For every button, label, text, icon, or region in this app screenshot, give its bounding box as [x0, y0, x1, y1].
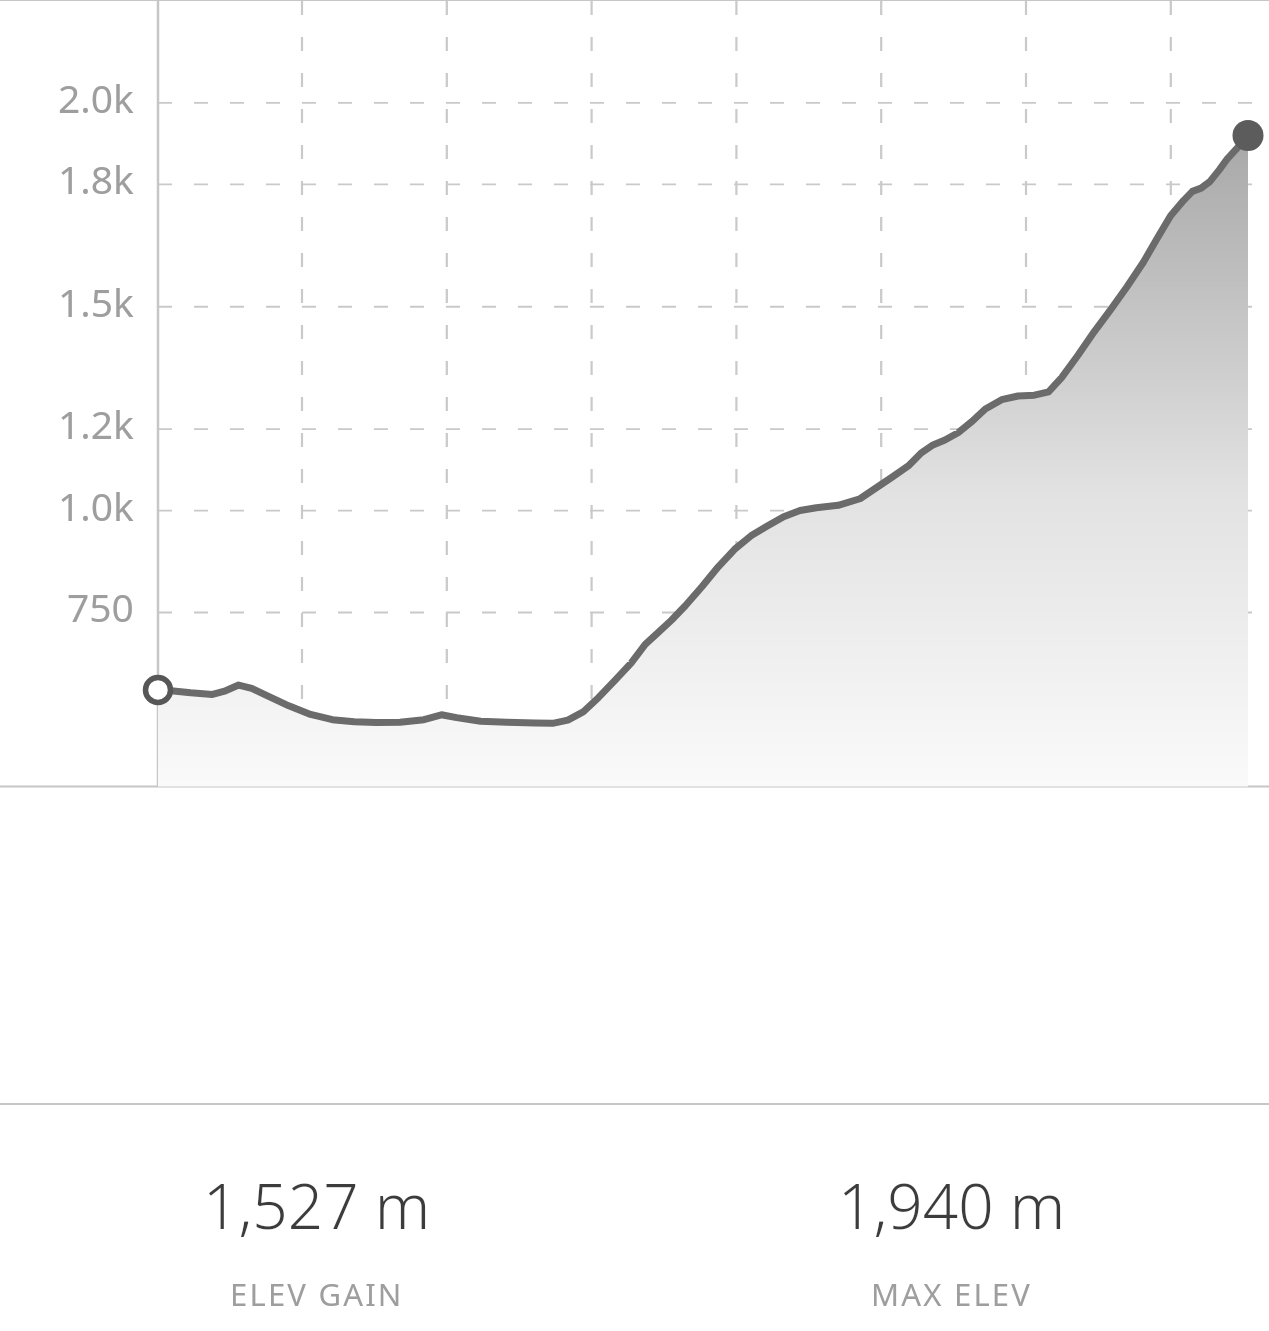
staticText: 1.0k	[58, 479, 134, 532]
button[interactable]: 1,527 m	[0, 1105, 634, 1331]
staticText: 1.5k	[58, 275, 134, 328]
staticText: MAX ELEV	[871, 1273, 1033, 1315]
staticText: 1.2k	[58, 397, 134, 450]
staticText: 1,940 m	[838, 1163, 1066, 1247]
staticText: 750	[67, 580, 134, 633]
button[interactable]: Elevation profile chart	[0, 1, 1269, 1103]
staticText: 1,527 m	[203, 1163, 431, 1247]
staticText: 1.8k	[58, 152, 134, 205]
button[interactable]: 1,940 m	[634, 1105, 1269, 1331]
staticText: 2.0k	[58, 71, 134, 124]
staticText: ELEV GAIN	[230, 1273, 404, 1315]
